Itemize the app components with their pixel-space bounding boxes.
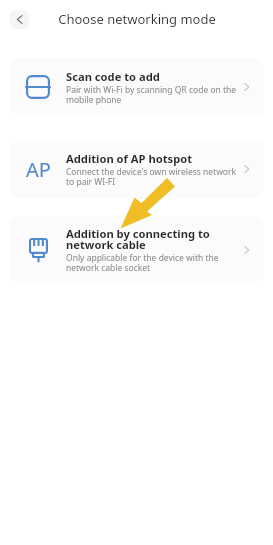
button[interactable]: AP <box>9 140 264 198</box>
staticText: Choose networking mode <box>58 10 216 28</box>
staticText: Connect the device's own wireless networ… <box>66 166 238 187</box>
staticText: Only applicable for the device with the … <box>66 252 238 273</box>
button[interactable]: Back <box>10 10 29 29</box>
staticText: Addition of AP hotspot <box>66 151 193 166</box>
staticText: Pair with Wi-Fi by scanning QR code on t… <box>66 84 238 105</box>
staticText: Addition by connecting to network cable <box>66 226 238 252</box>
staticText: Scan code to add <box>66 69 160 84</box>
button[interactable]: Addition by connecting to network cable <box>9 216 264 283</box>
button[interactable]: Scan code to add <box>9 58 264 116</box>
staticText: AP <box>26 156 51 183</box>
